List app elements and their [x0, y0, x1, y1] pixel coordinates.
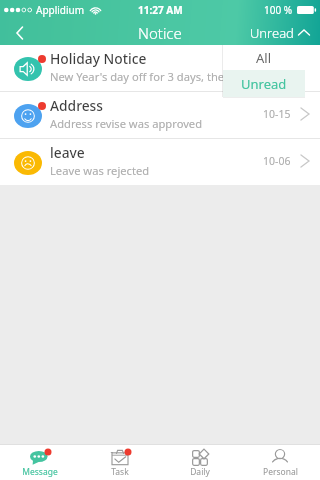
staticText: New Year's day off for 3 days, the ...	[50, 69, 237, 84]
staticText: Unread	[241, 75, 287, 93]
staticText: Address	[50, 96, 104, 115]
staticText: Notice	[138, 23, 182, 43]
staticText: Address revise was approved	[50, 116, 203, 131]
button[interactable]: Unread	[223, 70, 305, 97]
button[interactable]: Unread	[250, 20, 310, 45]
staticText: All	[256, 49, 272, 67]
staticText: 11:27 AM	[138, 3, 183, 17]
button[interactable]: Address	[0, 92, 320, 138]
button[interactable]: Daily	[160, 445, 240, 480]
staticText: 10-15	[263, 107, 291, 121]
staticText: Unread	[250, 24, 294, 42]
staticText: Message	[22, 466, 58, 478]
staticText: Applidium	[36, 3, 85, 17]
button[interactable]: Message	[0, 445, 80, 480]
staticText: leave	[50, 143, 85, 162]
staticText: Personal	[263, 466, 298, 478]
staticText: Task	[111, 466, 129, 478]
button[interactable]: Back	[0, 20, 40, 45]
button[interactable]: leave	[0, 139, 320, 185]
staticText: Leave was rejected	[50, 163, 150, 178]
button[interactable]: All	[223, 45, 305, 70]
staticText: 100 %	[264, 3, 293, 17]
staticText: Daily	[190, 466, 210, 478]
button[interactable]: Holiday Notice	[0, 45, 320, 91]
button[interactable]: Personal	[240, 445, 320, 480]
button[interactable]: Task	[80, 445, 160, 480]
staticText: 10-06	[263, 154, 291, 168]
staticText: Holiday Notice	[50, 49, 147, 68]
